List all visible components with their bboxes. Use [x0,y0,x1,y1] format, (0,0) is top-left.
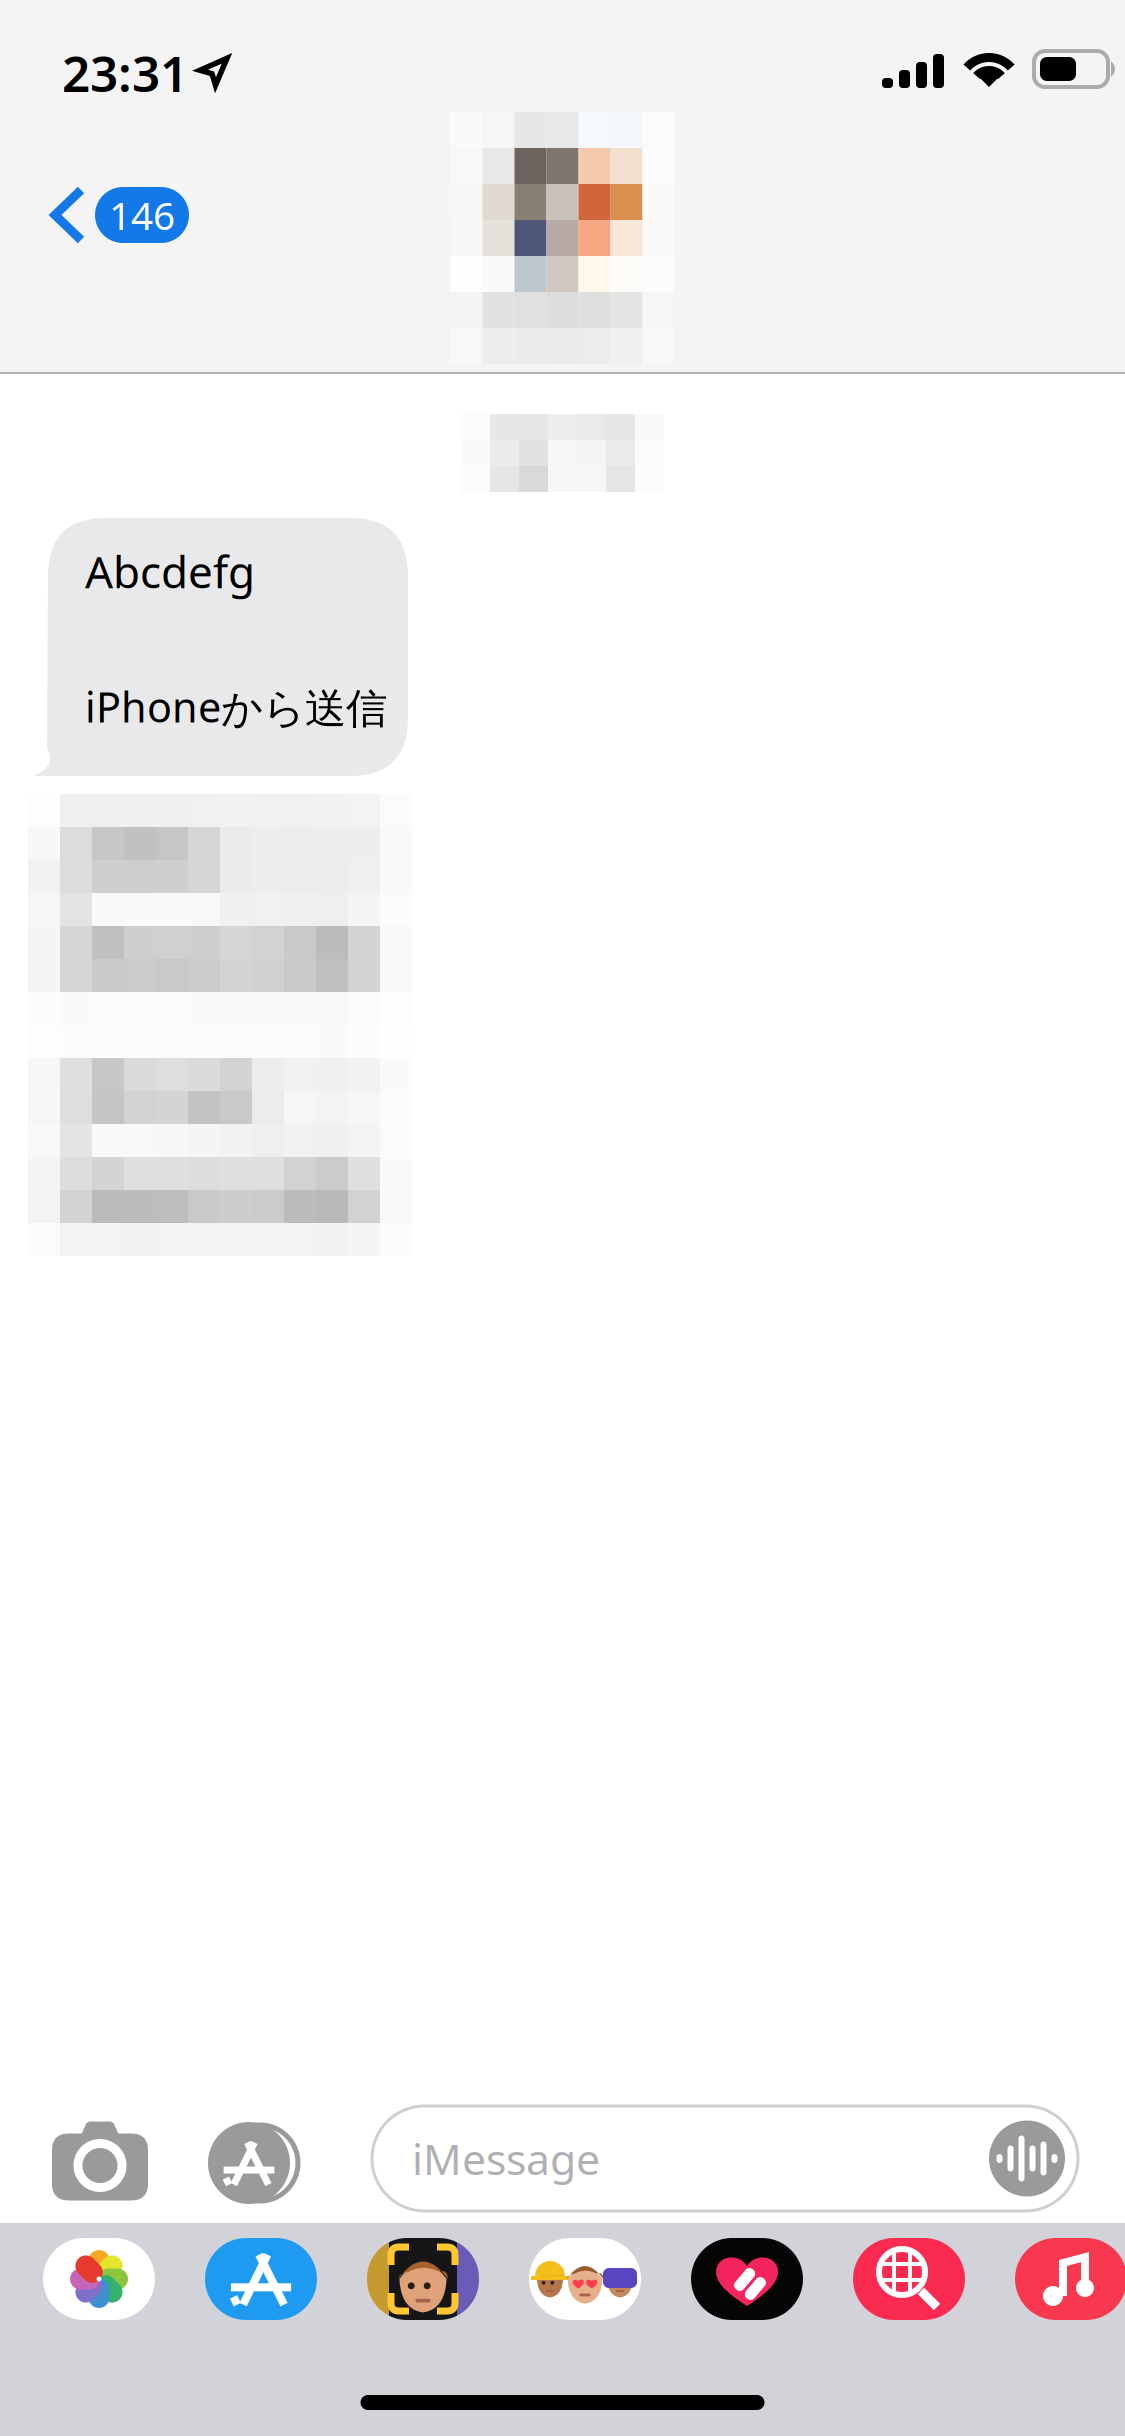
staticText: iMessage [412,2130,600,2187]
button[interactable]: Images [853,2238,965,2320]
button[interactable]: 146 [0,166,213,264]
button[interactable]: Digital Touch [691,2238,803,2320]
staticText: iPhoneから送信 [85,679,387,734]
button[interactable]: Record audio [989,2120,1065,2196]
staticText: 146 [109,189,175,241]
button[interactable]: Memoji [367,2238,479,2320]
button[interactable]: App Store [208,2122,304,2204]
button[interactable]: Memoji Stickers [529,2238,641,2320]
button[interactable]: Camera [52,2117,148,2205]
button[interactable]: App Store [205,2238,317,2320]
staticText: Abcdefg [85,542,255,600]
staticText: 23:31 [62,40,188,105]
button[interactable]: Music [1015,2238,1125,2320]
button[interactable]: Photos [43,2238,155,2320]
